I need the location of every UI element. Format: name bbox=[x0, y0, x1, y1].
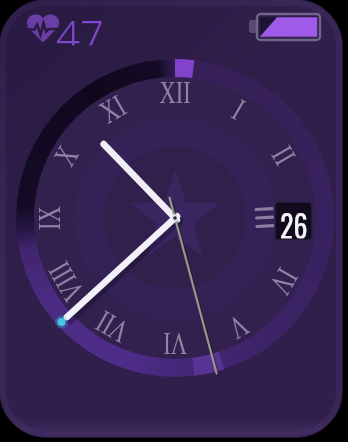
button[interactable]: 26 bbox=[275, 202, 312, 240]
staticText: XI bbox=[93, 87, 131, 129]
button[interactable]: 47 bbox=[26, 8, 110, 48]
staticText: VII bbox=[90, 304, 134, 350]
staticText: III bbox=[284, 207, 319, 229]
staticText: I bbox=[227, 91, 251, 126]
staticText: IV bbox=[263, 263, 306, 301]
staticText: II bbox=[266, 140, 304, 171]
staticText: IX bbox=[31, 206, 66, 230]
staticText: V bbox=[223, 308, 255, 347]
staticText: VIII bbox=[40, 256, 90, 307]
button[interactable] bbox=[246, 10, 324, 44]
staticText: 26 bbox=[280, 200, 308, 238]
staticText: XII bbox=[160, 74, 191, 109]
staticText: 47 bbox=[56, 5, 104, 45]
staticText: VI bbox=[163, 327, 187, 362]
staticText: X bbox=[46, 139, 85, 171]
